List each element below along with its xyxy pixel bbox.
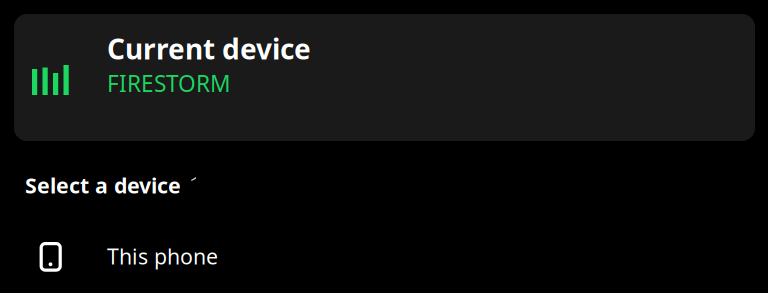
button[interactable]: Current device bbox=[14, 14, 755, 141]
button[interactable]: This phone bbox=[0, 231, 768, 293]
staticText: This phone bbox=[107, 242, 218, 270]
staticText: FIRESTORM bbox=[107, 68, 231, 98]
staticText: Select a device bbox=[25, 171, 181, 199]
staticText: Current device bbox=[107, 30, 311, 67]
